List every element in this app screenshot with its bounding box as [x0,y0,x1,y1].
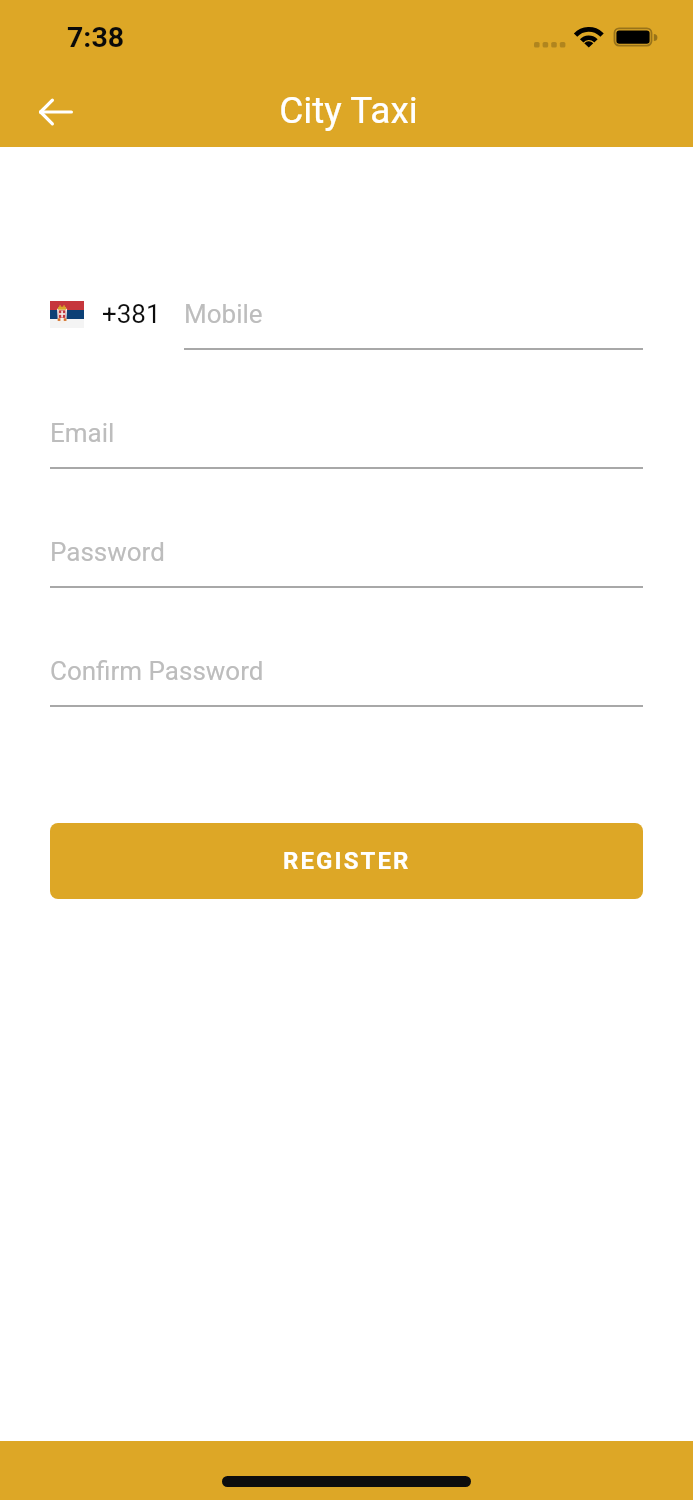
staticText: Mobile [184,299,263,329]
staticText: Confirm Password [50,656,264,686]
button[interactable]: Password [50,526,643,588]
staticText: REGISTER [283,847,411,875]
staticText: 7:38 [67,21,125,54]
button[interactable]: Mobile [184,288,643,350]
staticText: +381 [102,299,161,329]
staticText: City Taxi [2,89,693,132]
button[interactable]: Navigate back [24,81,88,143]
button[interactable]: Select country code, Serbia +381 [50,288,172,348]
button[interactable]: Home [222,1476,471,1487]
staticText: Email [50,418,115,448]
button[interactable]: Email [50,407,643,469]
staticText: Password [50,537,165,567]
button[interactable]: REGISTER [50,823,643,899]
button[interactable]: Confirm Password [50,645,643,707]
